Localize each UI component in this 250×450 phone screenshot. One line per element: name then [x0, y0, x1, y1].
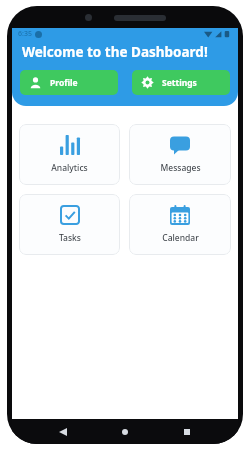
staticText: Analytics: [51, 162, 88, 174]
staticText: Calendar: [162, 232, 199, 244]
button[interactable]: Profile: [20, 70, 118, 95]
button[interactable]: Settings: [132, 70, 230, 95]
button[interactable]: Tasks: [19, 194, 120, 255]
button[interactable]: Calendar: [129, 194, 231, 255]
staticText: Messages: [160, 162, 201, 174]
button[interactable]: Home: [114, 421, 136, 443]
button[interactable]: Analytics: [19, 124, 120, 185]
button[interactable]: Recent apps: [176, 421, 198, 443]
staticText: Tasks: [59, 232, 81, 244]
staticText: Profile: [50, 77, 78, 89]
button[interactable]: Back: [52, 421, 74, 443]
staticText: Settings: [162, 77, 197, 89]
button[interactable]: Messages: [129, 124, 231, 185]
staticText: 6:35: [18, 29, 32, 39]
staticText: Welcome to the Dashboard!: [22, 43, 208, 61]
